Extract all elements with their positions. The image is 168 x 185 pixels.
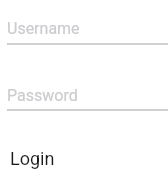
button[interactable]: Login bbox=[0, 142, 64, 172]
button[interactable]: Password bbox=[7, 79, 168, 111]
button[interactable]: Username bbox=[7, 13, 168, 45]
staticText: Username bbox=[7, 19, 80, 38]
staticText: Login bbox=[10, 148, 55, 169]
staticText: Password bbox=[7, 86, 78, 105]
